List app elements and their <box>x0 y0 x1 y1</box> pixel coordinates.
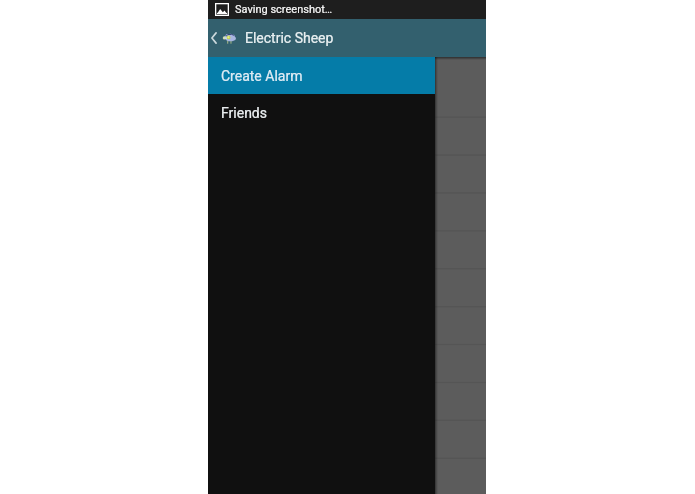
staticText: Saving screenshot… <box>235 3 333 16</box>
button[interactable]: Navigate up <box>208 19 237 57</box>
staticText: Electric Sheep <box>245 30 334 46</box>
button[interactable]: Friends <box>208 94 435 131</box>
staticText: Friends <box>221 105 267 121</box>
button[interactable]: Create Alarm <box>208 57 435 94</box>
button[interactable]: Close navigation drawer <box>435 57 486 494</box>
staticText: Create Alarm <box>221 68 303 84</box>
